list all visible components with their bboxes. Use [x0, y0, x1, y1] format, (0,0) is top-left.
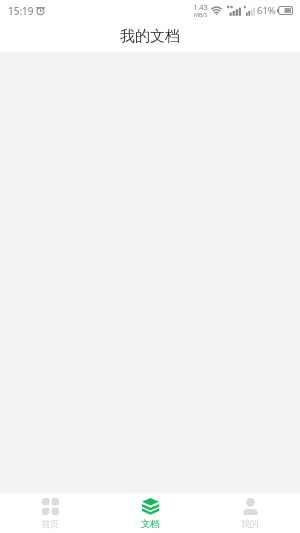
staticText: 首页	[41, 518, 59, 529]
staticText: 我的	[241, 518, 259, 529]
button[interactable]: 我的	[200, 493, 300, 533]
staticText: 15:19	[8, 4, 34, 18]
staticText: 文档	[141, 518, 159, 529]
button[interactable]: 首页	[0, 493, 100, 533]
staticText: 1.43	[193, 2, 208, 12]
button[interactable]: 文档	[100, 493, 200, 533]
staticText: 61%	[257, 4, 276, 17]
staticText: MB/S	[194, 11, 208, 18]
staticText: 我的文档	[120, 27, 180, 46]
